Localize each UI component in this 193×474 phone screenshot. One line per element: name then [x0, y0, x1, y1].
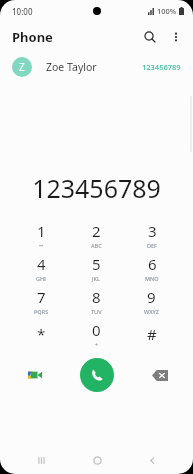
button[interactable]: Home [83, 446, 111, 474]
button[interactable]: Back [138, 446, 166, 474]
staticText: PQRS [34, 308, 49, 315]
button[interactable]: * [14, 317, 69, 350]
staticText: 0 [92, 320, 101, 340]
button[interactable]: 8 [69, 284, 124, 317]
staticText: 6 [148, 254, 157, 274]
staticText: # [147, 324, 157, 344]
staticText: ABC [91, 242, 102, 249]
staticText: Z [19, 60, 25, 74]
staticText: Zoe Taylor [46, 60, 97, 74]
button[interactable]: 9 [124, 284, 179, 317]
staticText: * [37, 324, 46, 344]
staticText: 8 [92, 287, 101, 307]
staticText: TUV [91, 308, 102, 315]
staticText: •• [39, 242, 44, 249]
staticText: 3 [148, 221, 157, 241]
button[interactable]: 0 [69, 317, 124, 350]
staticText: DEF [147, 242, 157, 249]
button[interactable]: 2 [69, 218, 124, 251]
staticText: JKL [92, 275, 101, 282]
staticText: 123456789 [142, 62, 181, 72]
button[interactable]: 5 [69, 251, 124, 284]
button[interactable]: 1 [14, 218, 69, 251]
staticText: 100% [157, 6, 177, 16]
button[interactable]: Video call [22, 362, 48, 388]
staticText: WXYZ [144, 308, 159, 315]
button[interactable]: Recents [27, 446, 55, 474]
button[interactable]: More options [163, 24, 189, 50]
button[interactable]: # [124, 317, 179, 350]
button[interactable]: Call [80, 358, 114, 392]
staticText: 1 [37, 221, 46, 241]
button[interactable]: 4 [14, 251, 69, 284]
staticText: 4 [37, 254, 46, 274]
button[interactable]: Backspace [147, 362, 173, 388]
button[interactable]: 3 [124, 218, 179, 251]
staticText: 2 [92, 221, 101, 241]
button[interactable]: Search [137, 24, 163, 50]
button[interactable]: 7 [14, 284, 69, 317]
button[interactable]: 6 [124, 251, 179, 284]
staticText: 10:00 [12, 6, 33, 17]
button[interactable]: Z [0, 52, 193, 82]
staticText: 5 [92, 254, 101, 274]
staticText: 7 [37, 287, 46, 307]
staticText: Phone [12, 28, 53, 46]
staticText: MNO [145, 275, 159, 282]
staticText: + [95, 341, 99, 348]
staticText: 123456789 [32, 171, 161, 205]
staticText: 9 [147, 287, 156, 307]
staticText: GHI [36, 275, 47, 282]
